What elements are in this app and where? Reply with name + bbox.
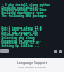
staticText: Install compilers & runtimes xyxy=(18,66,46,69)
staticText: Language Support xyxy=(17,60,47,65)
button[interactable]: Arrow left xyxy=(54,50,57,53)
button[interactable]: Escape key xyxy=(0,49,9,53)
button[interactable]: Arrow right xyxy=(59,50,62,53)
